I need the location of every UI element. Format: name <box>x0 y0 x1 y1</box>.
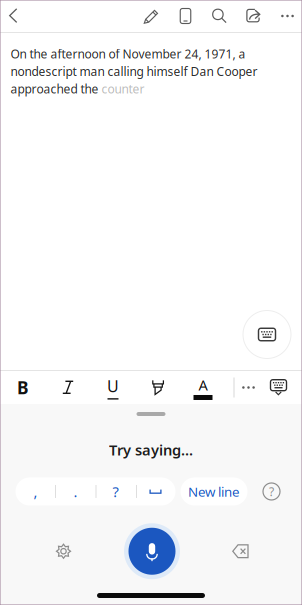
button[interactable]: Mobile view <box>168 0 202 32</box>
button[interactable]: Search <box>202 0 236 32</box>
button[interactable]: , <box>15 477 55 505</box>
button[interactable]: Hide keyboard <box>262 371 294 404</box>
button[interactable]: Dictation settings <box>41 529 85 573</box>
button[interactable]: Dictation help <box>261 481 281 501</box>
button[interactable]: Font color <box>180 371 225 404</box>
button[interactable]: Show keyboard <box>242 310 291 359</box>
staticText: A <box>198 375 207 394</box>
staticText: New line <box>188 483 240 500</box>
button[interactable]: Draw <box>134 0 168 32</box>
button[interactable]: ? <box>95 477 135 505</box>
staticText: ? <box>112 482 118 501</box>
staticText: On the afternoon of November 24, 1971, a… <box>10 46 257 97</box>
staticText: . <box>73 482 77 501</box>
staticText: ? <box>269 483 274 499</box>
button[interactable]: . <box>55 477 95 505</box>
button[interactable]: More options <box>270 0 302 32</box>
staticText: , <box>33 482 37 501</box>
button[interactable]: New line <box>180 477 247 505</box>
staticText: U <box>107 375 119 397</box>
button[interactable]: Stop dictation <box>124 523 180 579</box>
button[interactable]: Underline <box>90 371 135 404</box>
button[interactable]: Delete <box>218 529 262 573</box>
button[interactable]: Highlight <box>135 371 180 404</box>
staticText: Try saying... <box>109 440 193 459</box>
button[interactable]: B <box>0 371 45 404</box>
button[interactable]: Share <box>236 0 270 32</box>
button[interactable]: Space <box>135 477 175 505</box>
button[interactable]: More formatting <box>234 371 262 404</box>
button[interactable]: Italic <box>45 371 90 404</box>
button[interactable]: Back <box>0 0 29 32</box>
staticText: B <box>17 376 29 399</box>
